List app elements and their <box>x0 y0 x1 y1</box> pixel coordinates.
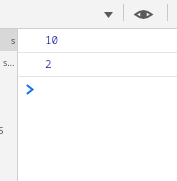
button[interactable]: JS <box>0 119 18 141</box>
staticText: s… <box>3 56 15 68</box>
button[interactable]: Show console sidebar <box>134 5 153 24</box>
button[interactable]: 2 <box>18 53 177 76</box>
staticText: 10 <box>45 32 59 47</box>
button[interactable] <box>18 77 177 101</box>
staticText: 2 <box>45 56 52 71</box>
button[interactable]: 10 <box>18 29 177 52</box>
staticText: JS <box>0 124 4 136</box>
staticText: s <box>11 34 16 46</box>
button[interactable]: Filter level <box>100 6 117 23</box>
button[interactable]: s… <box>0 51 18 73</box>
button[interactable]: s <box>0 29 18 51</box>
